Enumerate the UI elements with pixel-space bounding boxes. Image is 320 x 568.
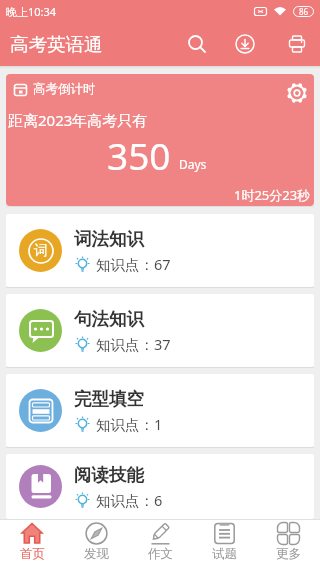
button[interactable]: 高考倒计时	[6, 74, 314, 206]
staticText: Days	[179, 156, 207, 172]
button[interactable]: 首页	[0, 520, 64, 568]
staticText: 晚上10:34	[6, 4, 57, 19]
button[interactable]: 阅读技能	[6, 454, 314, 519]
staticText: 发现	[84, 546, 109, 562]
staticText: 86	[299, 6, 309, 17]
button[interactable]: 发现	[64, 520, 128, 568]
staticText: 350	[107, 130, 171, 180]
staticText: 词	[34, 242, 48, 260]
button[interactable]: 句法知识	[6, 294, 314, 367]
staticText: 知识点：67	[96, 254, 171, 274]
button[interactable]	[225, 24, 265, 64]
button[interactable]: 更多	[256, 520, 320, 568]
staticText: 知识点：37	[96, 334, 171, 354]
staticText: 知识点：1	[96, 414, 163, 434]
button[interactable]: 词	[6, 214, 314, 287]
button[interactable]	[286, 82, 308, 104]
staticText: 作文	[148, 546, 173, 562]
staticText: 首页	[20, 546, 45, 562]
staticText: 试题	[212, 546, 237, 562]
button[interactable]: 试题	[192, 520, 256, 568]
staticText: 距离2023年高考只有	[8, 110, 148, 130]
button[interactable]: 作文	[128, 520, 192, 568]
staticText: 更多	[276, 546, 301, 562]
staticText: 完型填空	[74, 388, 144, 410]
button[interactable]	[177, 24, 217, 64]
staticText: 阅读技能	[74, 464, 144, 486]
staticText: 句法知识	[74, 308, 144, 330]
staticText: 1时25分23秒	[234, 186, 311, 204]
staticText: 知识点：6	[96, 490, 163, 510]
staticText: 词法知识	[74, 228, 144, 250]
button[interactable]	[277, 24, 317, 64]
button[interactable]: 完型填空	[6, 374, 314, 447]
staticText: 高考英语通	[10, 33, 103, 56]
staticText: 高考倒计时	[33, 81, 96, 97]
